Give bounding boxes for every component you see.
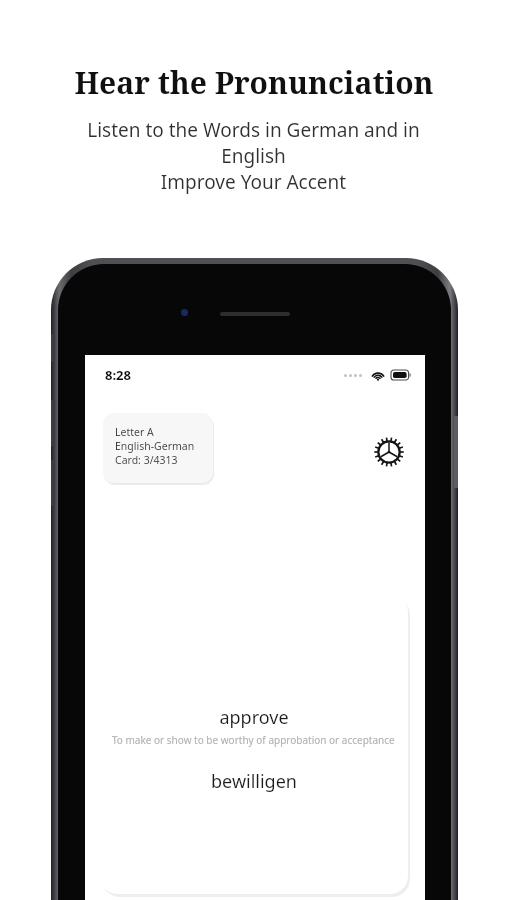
staticText: To make or show to be worthy of approbat… xyxy=(112,733,396,747)
staticText: Listen to the Words in German and in Eng… xyxy=(24,117,483,195)
staticText: Card: 3/4313 xyxy=(115,453,178,467)
staticText: Letter A xyxy=(115,425,154,439)
staticText: English-German xyxy=(115,439,195,453)
staticText: Hear the Pronunciation xyxy=(74,62,434,103)
staticText: 8:28 xyxy=(105,366,131,384)
button[interactable]: Letter A xyxy=(103,413,213,483)
button[interactable]: approve xyxy=(100,594,408,894)
staticText: bewilligen xyxy=(211,769,297,794)
staticText: approve xyxy=(219,705,289,730)
button[interactable]: Settings xyxy=(369,432,409,472)
